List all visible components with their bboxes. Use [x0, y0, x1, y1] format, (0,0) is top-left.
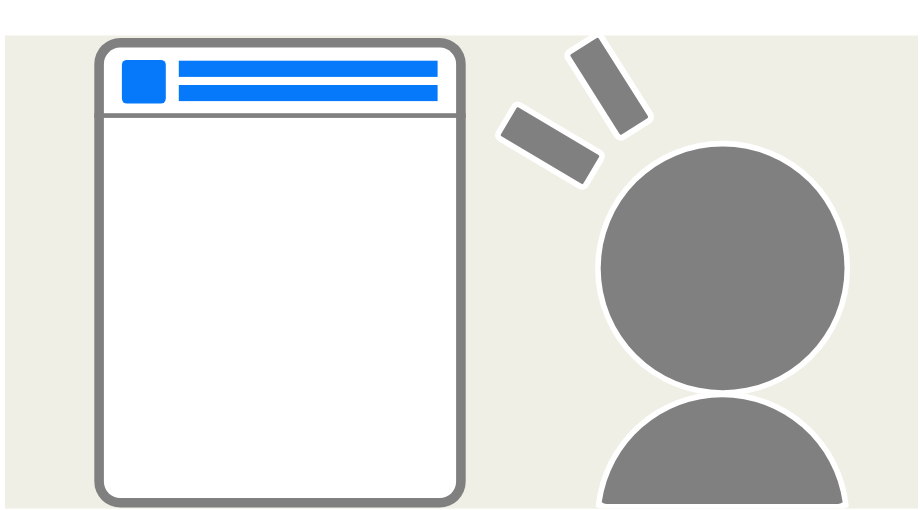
button[interactable]: App icon — [122, 60, 166, 104]
button[interactable]: Application window — [94, 38, 465, 508]
button[interactable]: User avatar — [595, 141, 850, 509]
